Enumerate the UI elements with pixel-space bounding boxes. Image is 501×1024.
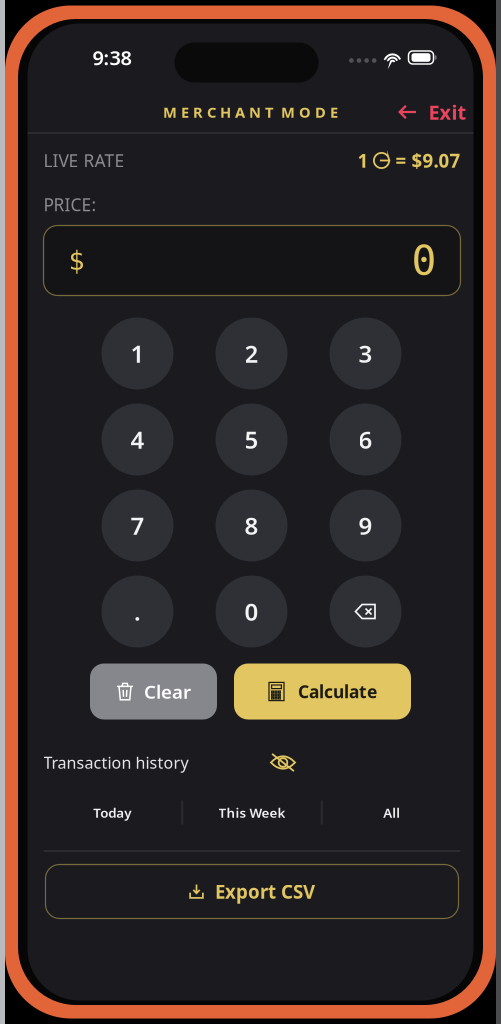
- staticText: M E R C H A N T M O D E: [163, 102, 338, 122]
- staticText: Clear: [144, 679, 191, 704]
- button[interactable]: 1: [101, 317, 173, 389]
- button[interactable]: All: [323, 800, 460, 824]
- staticText: .: [134, 596, 141, 627]
- staticText: Today: [93, 804, 131, 821]
- button[interactable]: 0: [215, 575, 287, 647]
- button[interactable]: 9: [329, 489, 401, 561]
- button[interactable]: 8: [215, 489, 287, 561]
- button[interactable]: 5: [215, 403, 287, 475]
- staticText: 9: [358, 510, 372, 541]
- button[interactable]: 7: [101, 489, 173, 561]
- staticText: 0: [244, 596, 258, 627]
- staticText: Calculate: [298, 680, 377, 703]
- button[interactable]: 6: [329, 403, 401, 475]
- button[interactable]: 4: [101, 403, 173, 475]
- button[interactable]: Delete: [329, 575, 401, 647]
- staticText: This Week: [218, 804, 285, 821]
- staticText: 4: [130, 424, 144, 455]
- staticText: LIVE RATE: [43, 149, 124, 172]
- staticText: 3: [358, 338, 372, 369]
- staticText: Transaction history: [43, 752, 188, 773]
- staticText: = $9.07: [395, 148, 460, 173]
- button[interactable]: Clear: [90, 663, 217, 719]
- button[interactable]: Exit: [398, 97, 466, 127]
- staticText: $: [68, 245, 84, 276]
- staticText: 6: [358, 424, 372, 455]
- staticText: 2: [244, 338, 258, 369]
- staticText: All: [383, 804, 400, 821]
- staticText: Export CSV: [215, 879, 315, 904]
- staticText: 8: [244, 510, 258, 541]
- button[interactable]: .: [101, 575, 173, 647]
- staticText: 9:38: [92, 44, 131, 71]
- button[interactable]: Export CSV: [45, 864, 458, 918]
- staticText: PRICE:: [43, 193, 96, 216]
- staticText: 5: [244, 424, 258, 455]
- staticText: 0: [411, 237, 436, 284]
- button[interactable]: Hide transaction history: [264, 747, 301, 777]
- button[interactable]: Calculate: [234, 663, 411, 719]
- staticText: 7: [130, 510, 144, 541]
- button[interactable]: 3: [329, 317, 401, 389]
- button[interactable]: 2: [215, 317, 287, 389]
- staticText: 1: [130, 338, 144, 369]
- button[interactable]: Today: [43, 800, 181, 824]
- staticText: 1: [357, 148, 368, 173]
- staticText: Exit: [428, 99, 466, 125]
- button[interactable]: This Week: [183, 800, 321, 824]
